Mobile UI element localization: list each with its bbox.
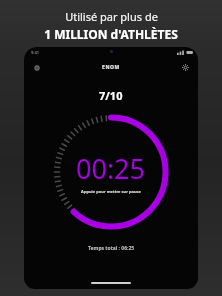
button[interactable]: Settings <box>30 61 43 74</box>
staticText: ENOM <box>102 64 120 71</box>
staticText: Appuie pour mettre sur pause <box>81 189 141 194</box>
staticText: 00:25 <box>76 150 146 187</box>
button[interactable]: 00:25 <box>52 113 170 231</box>
staticText: Utilisé par plus de <box>65 9 158 24</box>
staticText: Temps total : 06:25 <box>88 245 135 252</box>
button[interactable]: Brightness <box>179 61 192 74</box>
staticText: 7/10 <box>99 88 123 103</box>
staticText: 1 MILLION d'ATHLÈTES <box>44 26 178 42</box>
staticText: 9:41 <box>31 50 39 55</box>
